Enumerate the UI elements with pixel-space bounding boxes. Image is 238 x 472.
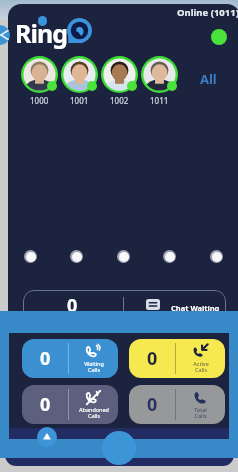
staticText: Abandoned Calls	[79, 406, 109, 420]
staticText: 1011	[150, 95, 169, 106]
button[interactable]: Step 3	[117, 250, 130, 263]
button[interactable]: 1000	[19, 56, 59, 106]
staticText: Active Calls	[193, 360, 209, 374]
staticText: Online (1011)	[177, 6, 238, 19]
staticText: Total Calls	[194, 406, 207, 420]
staticText: 0	[147, 346, 158, 371]
staticText: Chat Waiting	[171, 303, 220, 313]
button[interactable]: Step 4	[163, 250, 176, 263]
button[interactable]: Step 1	[24, 250, 37, 263]
button[interactable]: All	[200, 70, 217, 88]
button[interactable]: 0	[22, 339, 118, 378]
staticText: Waiting Calls	[84, 360, 104, 374]
button[interactable]: Scroll to top	[37, 427, 57, 447]
staticText: 1002	[110, 95, 129, 106]
button[interactable]: 0	[129, 385, 225, 424]
button[interactable]: Home	[102, 431, 136, 465]
staticText: 1001	[70, 95, 89, 106]
button[interactable]: 1001	[59, 56, 99, 106]
staticText: Ring	[15, 16, 67, 50]
button[interactable]: Step 2	[70, 250, 83, 263]
button[interactable]: 1002	[99, 56, 139, 106]
button[interactable]: 0	[129, 339, 225, 378]
staticText: 0	[40, 392, 51, 417]
button[interactable]: 1011	[139, 56, 179, 106]
staticText: 0	[40, 346, 51, 371]
button[interactable]: 0	[22, 385, 118, 424]
staticText: 0	[67, 293, 78, 318]
staticText: 0	[147, 392, 158, 417]
button[interactable]: Step 5	[210, 250, 223, 263]
staticText: 1000	[30, 95, 49, 106]
button[interactable]: Back	[0, 25, 10, 45]
button[interactable]: 0	[23, 290, 226, 330]
